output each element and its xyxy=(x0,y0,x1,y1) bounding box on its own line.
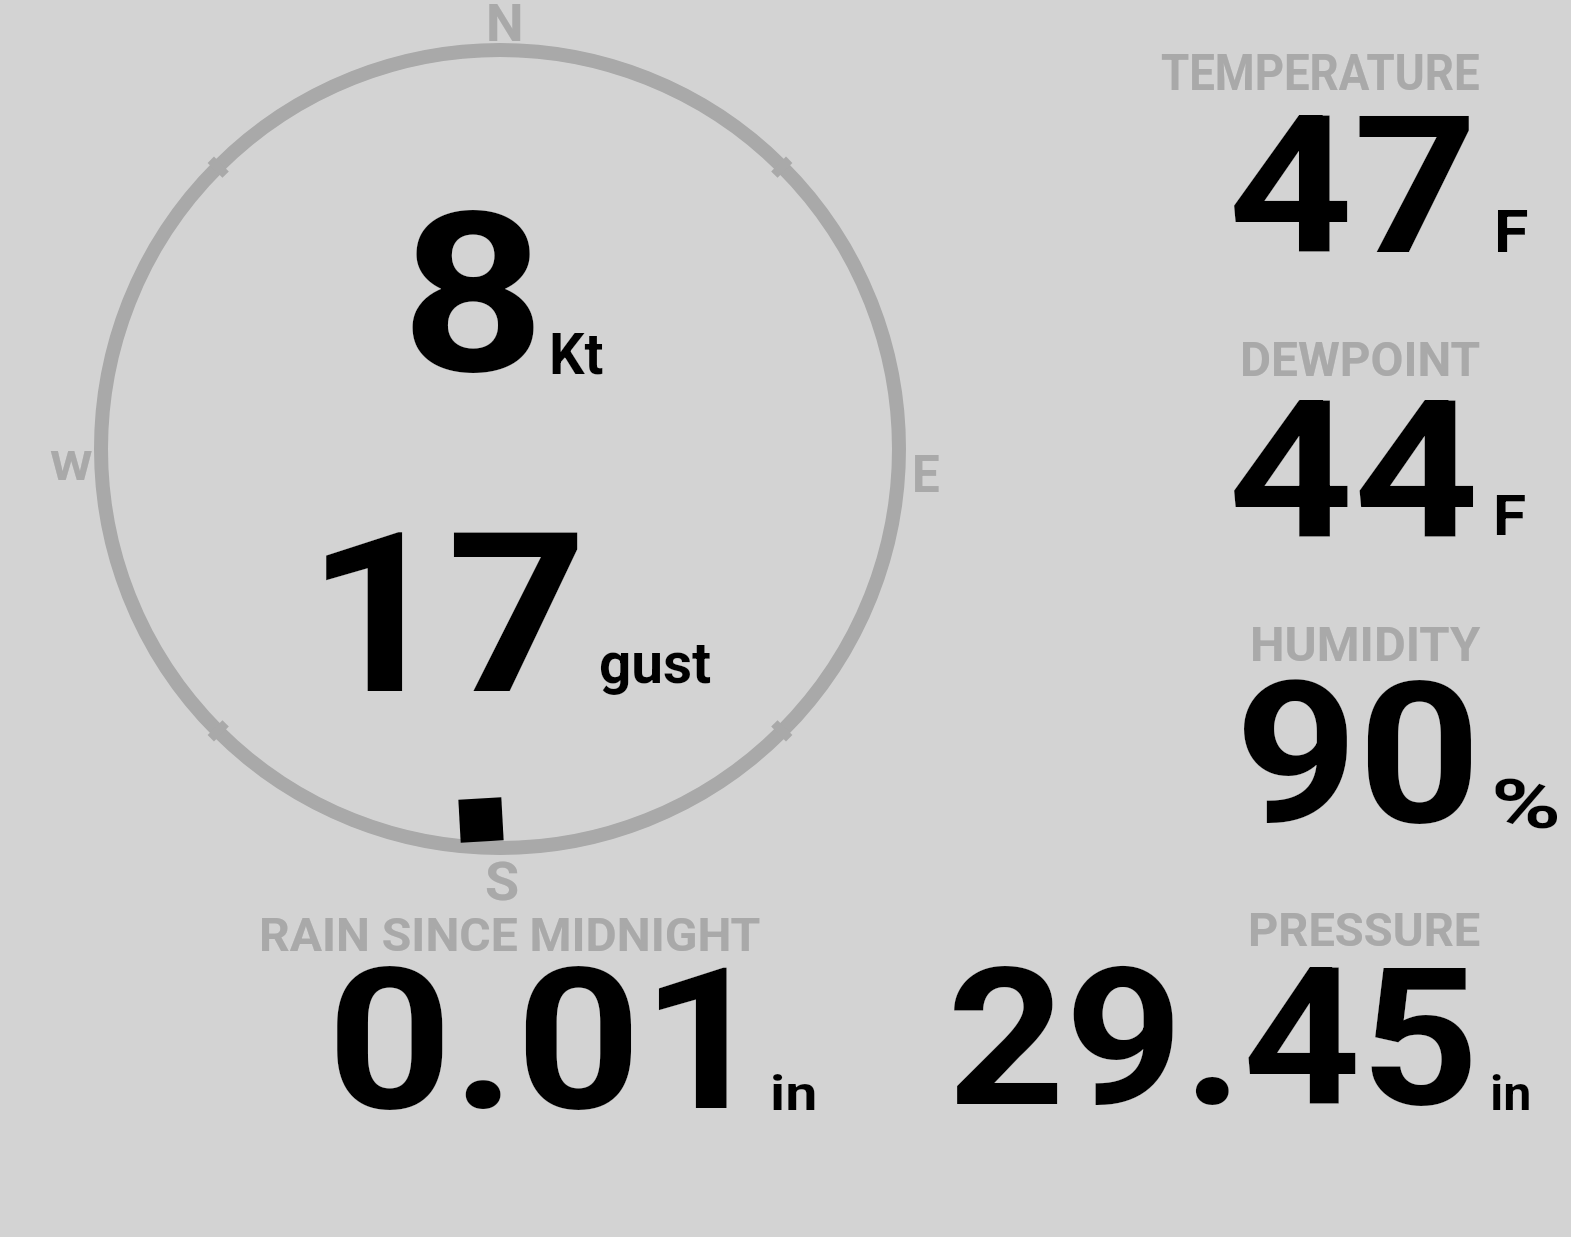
staticText: 17 xyxy=(306,484,588,745)
staticText: 8 xyxy=(401,164,546,426)
staticText: HUMIDITY xyxy=(1250,616,1480,673)
staticText: S xyxy=(485,850,520,914)
button[interactable]: Humidity 90 percent xyxy=(1150,610,1560,835)
button[interactable]: Rain since midnight 0.01 inches xyxy=(250,896,830,1121)
staticText: 29.45 xyxy=(947,927,1479,1151)
staticText: DEWPOINT xyxy=(1240,331,1481,388)
staticText: in xyxy=(770,1066,818,1122)
staticText: % xyxy=(1491,764,1561,844)
staticText: gust xyxy=(599,630,712,697)
staticText: 44 xyxy=(1228,359,1480,584)
button[interactable]: Temperature 47 degrees Fahrenheit xyxy=(1150,40,1560,265)
staticText: 0.01 xyxy=(327,926,767,1157)
button[interactable]: Pressure 29.45 inches xyxy=(930,896,1560,1121)
staticText: E xyxy=(912,444,940,504)
staticText: in xyxy=(1490,1066,1532,1122)
staticText: Kt xyxy=(549,321,604,388)
staticText: W xyxy=(50,443,93,490)
staticText: PRESSURE xyxy=(1248,902,1481,957)
staticText: TEMPERATURE xyxy=(1161,44,1480,102)
staticText: 90 xyxy=(1235,640,1481,870)
staticText: 47 xyxy=(1228,75,1479,298)
button[interactable]: Wind compass, 8 knots, gusting 17 xyxy=(94,43,906,855)
staticText: N xyxy=(486,0,524,53)
staticText: RAIN SINCE MIDNIGHT xyxy=(259,907,761,962)
staticText: F xyxy=(1494,197,1529,266)
button[interactable]: Dewpoint 44 degrees Fahrenheit xyxy=(1150,325,1560,550)
staticText: F xyxy=(1493,484,1526,548)
